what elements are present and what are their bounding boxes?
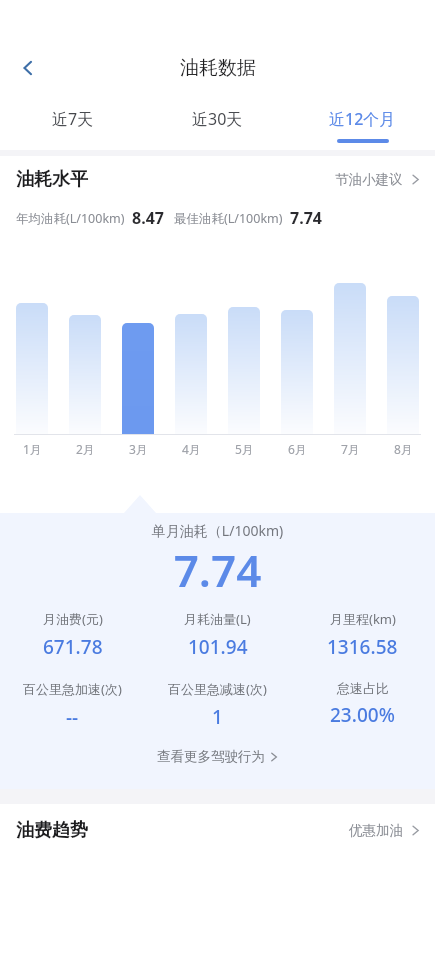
button[interactable]: 节油小建议 (323, 165, 435, 194)
button[interactable]: 近7天 (0, 96, 145, 150)
staticText: 查看更多驾驶行为 (157, 748, 265, 765)
staticText: 近12个月 (329, 108, 396, 130)
staticText: 单月油耗（L/100km) (0, 521, 435, 540)
staticText: 1316.58 (327, 634, 398, 660)
staticText: 油耗水平 (16, 168, 88, 191)
button[interactable] (16, 303, 48, 434)
button[interactable] (122, 323, 154, 434)
staticText: 优惠加油 (349, 822, 403, 839)
staticText: 23.00% (330, 702, 395, 728)
staticText: 最佳油耗(L/100km) (174, 210, 283, 227)
button[interactable] (281, 310, 313, 434)
staticText: 百公里急减速(次) (168, 680, 267, 698)
staticText: 1 (212, 704, 223, 730)
button[interactable] (387, 296, 419, 434)
staticText: 近30天 (192, 108, 243, 130)
staticText: 年均油耗(L/100km) (16, 210, 125, 227)
staticText: 101.94 (188, 634, 248, 660)
staticText: 7.74 (0, 540, 435, 600)
button[interactable] (69, 315, 101, 434)
staticText: -- (66, 704, 79, 730)
staticText: 671.78 (43, 634, 103, 660)
staticText: 怠速占比 (337, 680, 389, 696)
button[interactable] (334, 283, 366, 434)
staticText: 油耗数据 (180, 56, 256, 80)
button[interactable]: Back (6, 46, 50, 90)
staticText: 月油费(元) (43, 610, 103, 628)
staticText: 月里程(km) (330, 610, 396, 628)
staticText: 7.74 (290, 207, 322, 229)
staticText: 2月 (76, 441, 95, 457)
staticText: 8月 (394, 441, 413, 457)
staticText: 节油小建议 (335, 171, 403, 188)
button[interactable]: 近30天 (145, 96, 290, 150)
staticText: 百公里急加速(次) (23, 680, 122, 698)
staticText: 近7天 (52, 108, 94, 130)
staticText: 油费趋势 (16, 819, 88, 842)
button[interactable]: 优惠加油 (337, 816, 435, 845)
staticText: 4月 (182, 441, 201, 457)
staticText: 5月 (235, 441, 254, 457)
button[interactable] (175, 314, 207, 434)
staticText: 8.47 (132, 207, 164, 229)
button[interactable] (228, 307, 260, 434)
staticText: 6月 (288, 441, 307, 457)
button[interactable]: 近12个月 (290, 96, 435, 150)
staticText: 7月 (341, 441, 360, 457)
staticText: 3月 (129, 441, 148, 457)
button[interactable]: 查看更多驾驶行为 (147, 744, 289, 769)
staticText: 1月 (23, 441, 42, 457)
staticText: 月耗油量(L) (184, 610, 251, 628)
